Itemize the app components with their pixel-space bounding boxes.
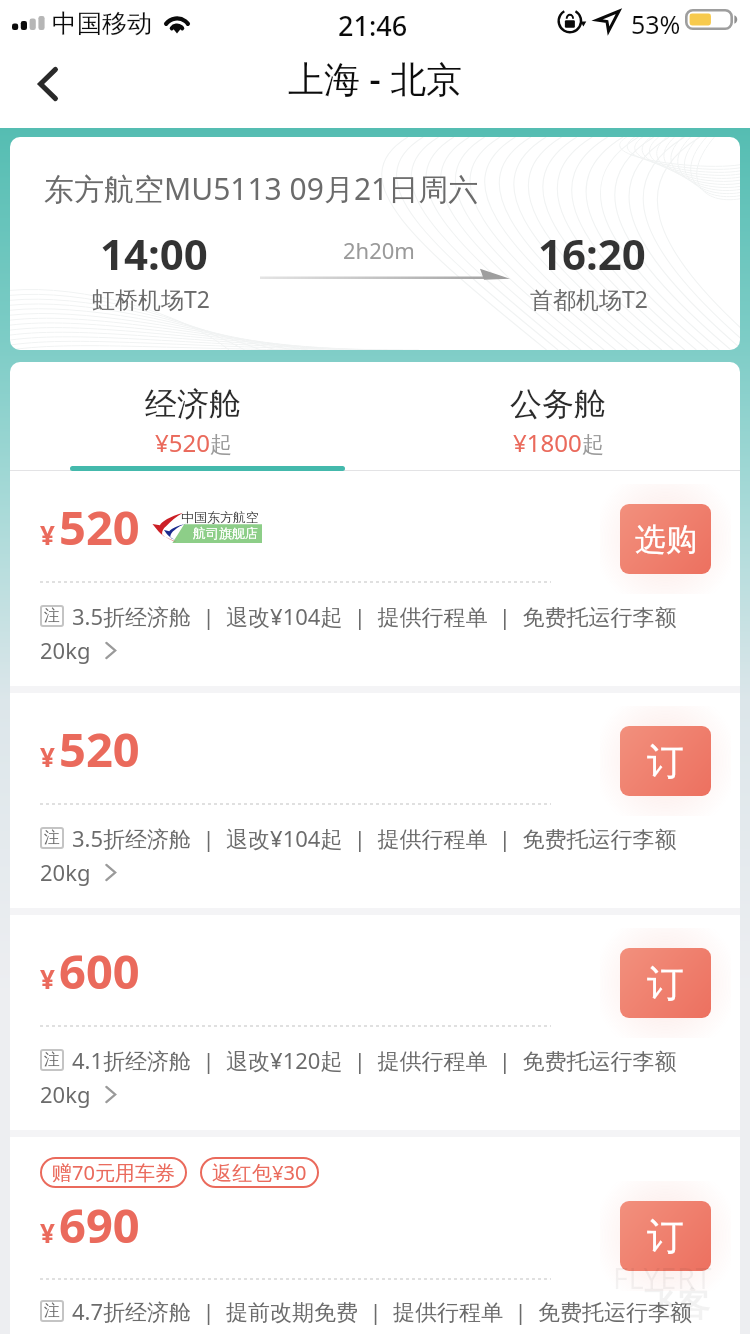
staticText: FLYERT <box>613 1258 713 1297</box>
button[interactable]: ¥ <box>10 471 740 686</box>
staticText: 公务舱 <box>510 384 606 424</box>
staticText: 上海 - 北京 <box>288 54 463 103</box>
staticText: 14:00 <box>100 225 208 282</box>
button[interactable]: ¥ <box>10 915 740 1130</box>
staticText: 订 <box>647 960 684 1007</box>
button[interactable]: 公务舱 <box>375 362 740 471</box>
button[interactable]: 东方航空MU5113 09月21日周六 <box>10 137 740 350</box>
staticText: 520 <box>59 495 140 559</box>
button[interactable]: 赠70元用车券 <box>10 1137 740 1334</box>
staticText: 东方航空MU5113 09月21日周六 <box>44 168 479 209</box>
staticText: 4.1折经济舱 | 退改¥120起 | 提供行程单 | 免费托运行李额 <box>72 1045 677 1075</box>
staticText: 注 <box>44 828 60 848</box>
staticText: 20kg <box>40 857 91 887</box>
staticText: 起 <box>582 431 604 459</box>
staticText: 注 <box>44 1301 60 1321</box>
button[interactable]: 订 <box>620 948 711 1018</box>
staticText: ¥1800 <box>513 426 582 459</box>
staticText: 订 <box>647 1213 684 1260</box>
staticText: ¥ <box>40 739 55 774</box>
button[interactable]: Back <box>10 52 86 116</box>
staticText: ¥520 <box>155 426 210 459</box>
staticText: 53% <box>631 7 681 41</box>
staticText: 3.5折经济舱 | 退改¥104起 | 提供行程单 | 免费托运行李额 <box>72 601 677 631</box>
staticText: 21:46 <box>338 7 408 44</box>
staticText: 4.7折经济舱 | 提前改期免费 | 提供行程单 | 免费托运行李额 <box>72 1296 693 1326</box>
staticText: 注 <box>44 606 60 626</box>
staticText: 起 <box>210 431 232 459</box>
button[interactable]: 选购 <box>620 504 711 574</box>
staticText: 中国东方航空 <box>181 509 259 525</box>
staticText: 20kg <box>40 635 91 665</box>
staticText: 注 <box>44 1050 60 1070</box>
staticText: ¥ <box>40 1215 55 1250</box>
button[interactable]: ¥ <box>10 693 740 908</box>
staticText: ¥ <box>40 517 55 552</box>
staticText: 返红包¥30 <box>212 1159 307 1186</box>
staticText: 520 <box>59 717 140 781</box>
button[interactable]: 订 <box>620 1201 711 1271</box>
staticText: 3.5折经济舱 | 退改¥104起 | 提供行程单 | 免费托运行李额 <box>72 823 677 853</box>
button[interactable]: 订 <box>620 726 711 796</box>
staticText: 2h20m <box>343 235 415 265</box>
staticText: 首都机场T2 <box>530 283 648 314</box>
staticText: ¥ <box>40 961 55 996</box>
staticText: 600 <box>59 939 140 1003</box>
staticText: 订 <box>647 738 684 785</box>
staticText: 选购 <box>635 520 697 559</box>
staticText: 虹桥机场T2 <box>92 283 210 314</box>
staticText: 中国移动 <box>52 8 152 39</box>
staticText: 16:20 <box>538 225 646 282</box>
staticText: 经济舱 <box>145 384 241 424</box>
button[interactable]: 经济舱 <box>10 362 375 471</box>
staticText: 赠70元用车券 <box>52 1159 175 1186</box>
staticText: 690 <box>59 1193 140 1257</box>
staticText: 航司旗舰店 <box>193 525 258 541</box>
staticText: 飞客 <box>644 1284 710 1326</box>
staticText: 20kg <box>40 1079 91 1109</box>
